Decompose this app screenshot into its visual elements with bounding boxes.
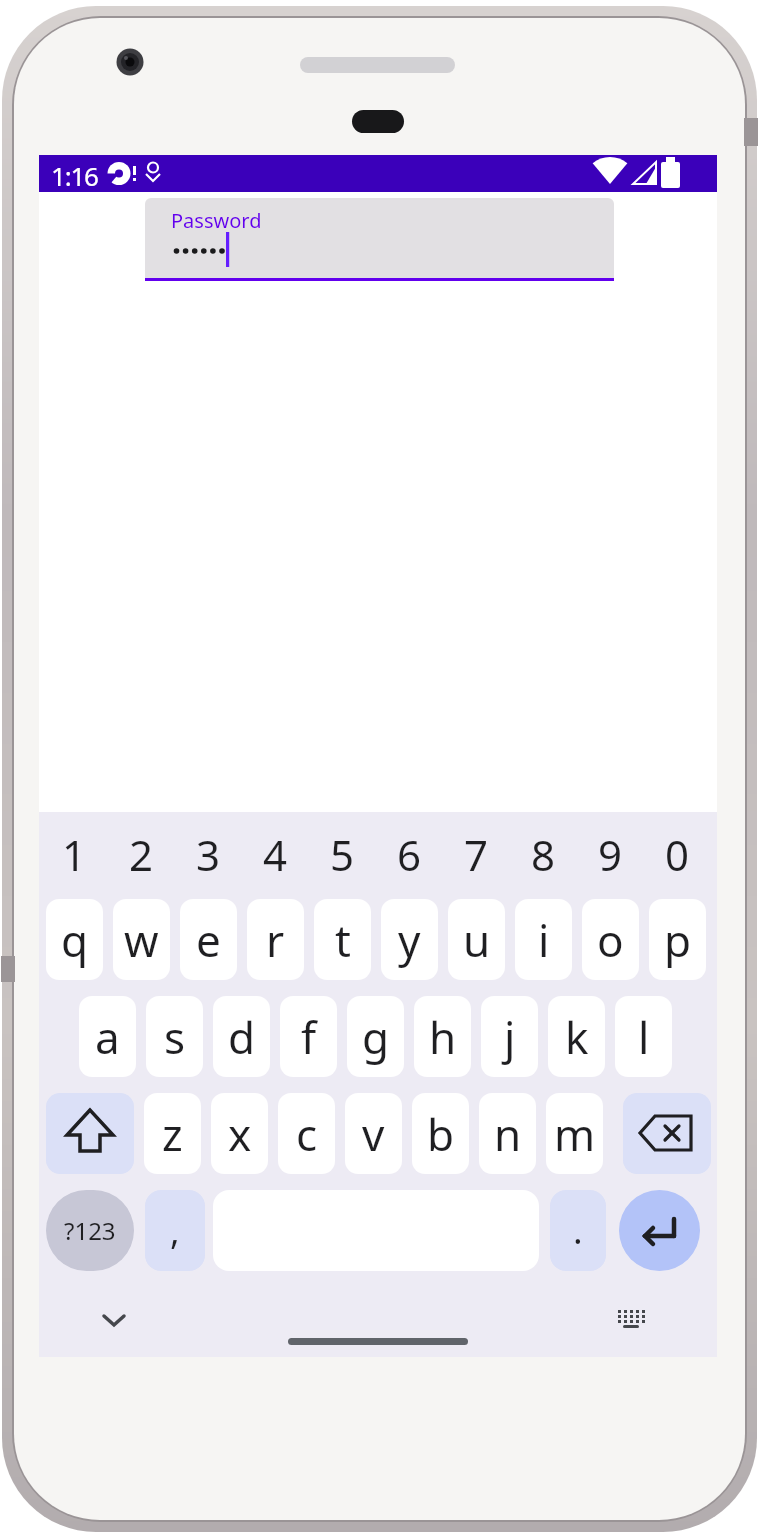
button[interactable]: Password — [145, 198, 614, 281]
button[interactable]: o — [582, 899, 639, 980]
staticText: h — [429, 1007, 457, 1067]
button[interactable]: ?123 — [46, 1190, 134, 1271]
button[interactable]: 7 — [448, 826, 505, 882]
staticText: 3 — [196, 826, 221, 882]
staticText: a — [95, 1007, 120, 1067]
staticText: 1 — [62, 826, 87, 882]
button[interactable]: v — [345, 1093, 402, 1174]
button[interactable]: u — [448, 899, 505, 980]
button[interactable]: x — [211, 1093, 268, 1174]
button[interactable]: e — [180, 899, 237, 980]
button[interactable]: q — [46, 899, 103, 980]
button[interactable]: 0 — [649, 826, 706, 882]
staticText: m — [554, 1104, 596, 1164]
staticText: p — [664, 910, 692, 970]
staticText: , — [170, 1206, 180, 1255]
staticText: q — [61, 910, 89, 970]
staticText: w — [124, 910, 159, 970]
staticText: Password — [171, 207, 262, 234]
button[interactable]: j — [481, 996, 538, 1077]
button[interactable]: h — [414, 996, 471, 1077]
staticText: i — [538, 910, 550, 970]
staticText: g — [362, 1007, 390, 1067]
staticText: s — [164, 1007, 186, 1067]
button[interactable]: 1 — [46, 826, 103, 882]
staticText: o — [597, 910, 624, 970]
staticText: k — [565, 1007, 589, 1067]
button[interactable]: d — [213, 996, 270, 1077]
button[interactable]: 3 — [180, 826, 237, 882]
button[interactable]: 2 — [113, 826, 170, 882]
button[interactable]: w — [113, 899, 170, 980]
button[interactable] — [94, 1300, 134, 1340]
staticText: r — [266, 910, 285, 970]
button[interactable]: y — [381, 899, 438, 980]
button[interactable]: l — [615, 996, 672, 1077]
button[interactable]: i — [515, 899, 572, 980]
staticText: f — [301, 1007, 317, 1067]
button[interactable]: n — [479, 1093, 536, 1174]
button[interactable]: 8 — [515, 826, 572, 882]
button[interactable]: m — [546, 1093, 603, 1174]
button[interactable]: a — [79, 996, 136, 1077]
staticText: 0 — [665, 826, 690, 882]
button[interactable]: g — [347, 996, 404, 1077]
button[interactable]: z — [144, 1093, 201, 1174]
button[interactable]: 5 — [314, 826, 371, 882]
staticText: y — [398, 910, 421, 970]
staticText: d — [228, 1007, 256, 1067]
staticText: c — [296, 1104, 318, 1164]
staticText: v — [362, 1104, 385, 1164]
staticText: n — [494, 1104, 522, 1164]
button[interactable] — [46, 1093, 134, 1174]
staticText: 8 — [531, 826, 556, 882]
button[interactable]: b — [412, 1093, 469, 1174]
staticText: 5 — [330, 826, 355, 882]
staticText: z — [162, 1104, 183, 1164]
button[interactable]: 9 — [582, 826, 639, 882]
button[interactable] — [623, 1093, 711, 1174]
staticText: u — [463, 910, 491, 970]
staticText: l — [638, 1007, 650, 1067]
staticText: x — [228, 1104, 252, 1164]
button[interactable]: r — [247, 899, 304, 980]
button[interactable]: c — [278, 1093, 335, 1174]
staticText: t — [335, 910, 351, 970]
staticText: 9 — [598, 826, 623, 882]
staticText: j — [504, 1007, 516, 1067]
staticText: e — [196, 910, 221, 970]
staticText: 4 — [263, 826, 288, 882]
staticText: 7 — [464, 826, 489, 882]
button[interactable] — [619, 1190, 700, 1271]
staticText: b — [427, 1104, 455, 1164]
button[interactable]: f — [280, 996, 337, 1077]
staticText: 2 — [129, 826, 154, 882]
button[interactable]: 6 — [381, 826, 438, 882]
staticText: 1:16 — [51, 158, 98, 193]
staticText: ?123 — [64, 1214, 116, 1247]
button[interactable] — [611, 1300, 651, 1340]
button[interactable]: . — [550, 1190, 606, 1271]
button[interactable]: , — [145, 1190, 205, 1271]
button[interactable]: k — [548, 996, 605, 1077]
button[interactable]: t — [314, 899, 371, 980]
staticText: 6 — [397, 826, 422, 882]
button[interactable]: s — [146, 996, 203, 1077]
button[interactable]: 4 — [247, 826, 304, 882]
staticText: . — [573, 1206, 583, 1255]
button[interactable]: p — [649, 899, 706, 980]
